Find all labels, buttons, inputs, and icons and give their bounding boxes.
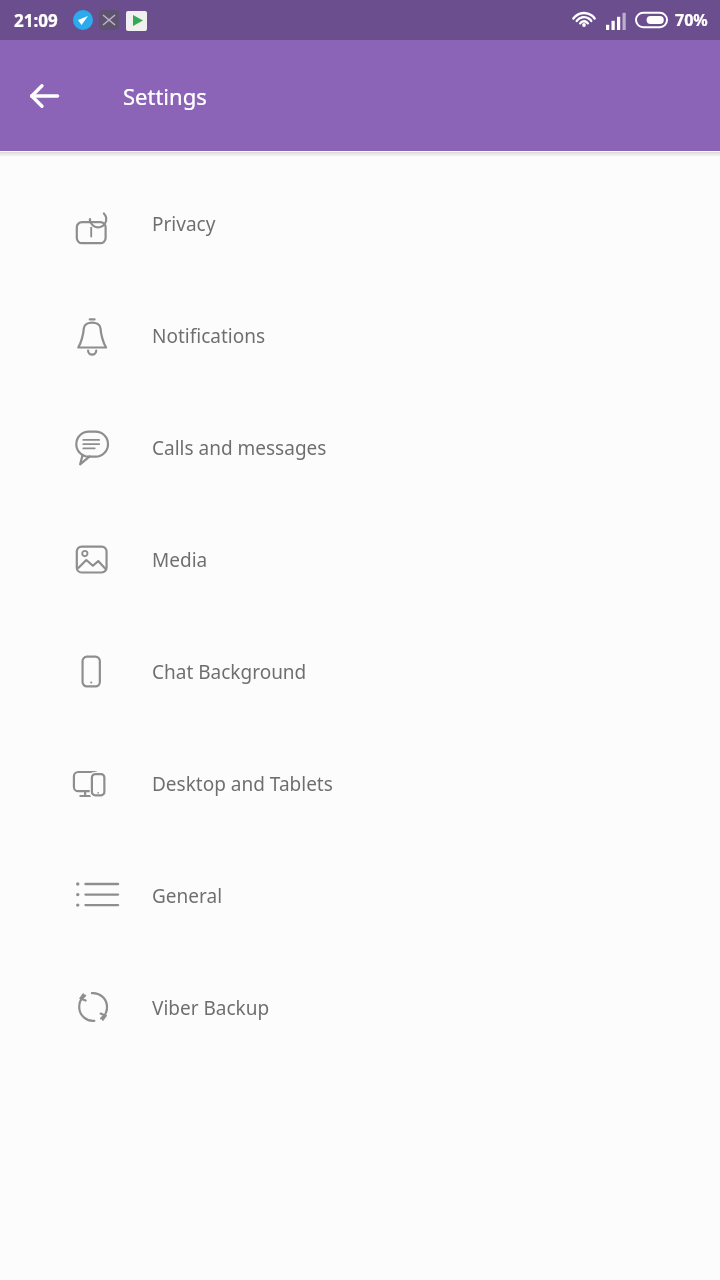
staticText: 70% (675, 9, 708, 31)
staticText: Privacy (152, 211, 216, 237)
staticText: Notifications (152, 323, 266, 349)
staticText: Settings (123, 81, 207, 111)
button[interactable]: Desktop and Tablets (0, 728, 720, 840)
button[interactable]: Media (0, 504, 720, 616)
staticText: Calls and messages (152, 435, 327, 461)
button[interactable]: Calls and messages (0, 392, 720, 504)
button[interactable]: General (0, 840, 720, 952)
button[interactable]: Chat Background (0, 616, 720, 728)
button[interactable]: Viber Backup (0, 952, 720, 1064)
staticText: 21:09 (14, 9, 58, 32)
button[interactable]: Privacy (0, 168, 720, 280)
button[interactable]: Back (16, 68, 72, 124)
staticText: General (152, 883, 223, 909)
button[interactable]: Notifications (0, 280, 720, 392)
staticText: Media (152, 547, 208, 573)
staticText: Viber Backup (152, 995, 270, 1021)
staticText: Desktop and Tablets (152, 771, 333, 797)
staticText: Chat Background (152, 659, 307, 685)
